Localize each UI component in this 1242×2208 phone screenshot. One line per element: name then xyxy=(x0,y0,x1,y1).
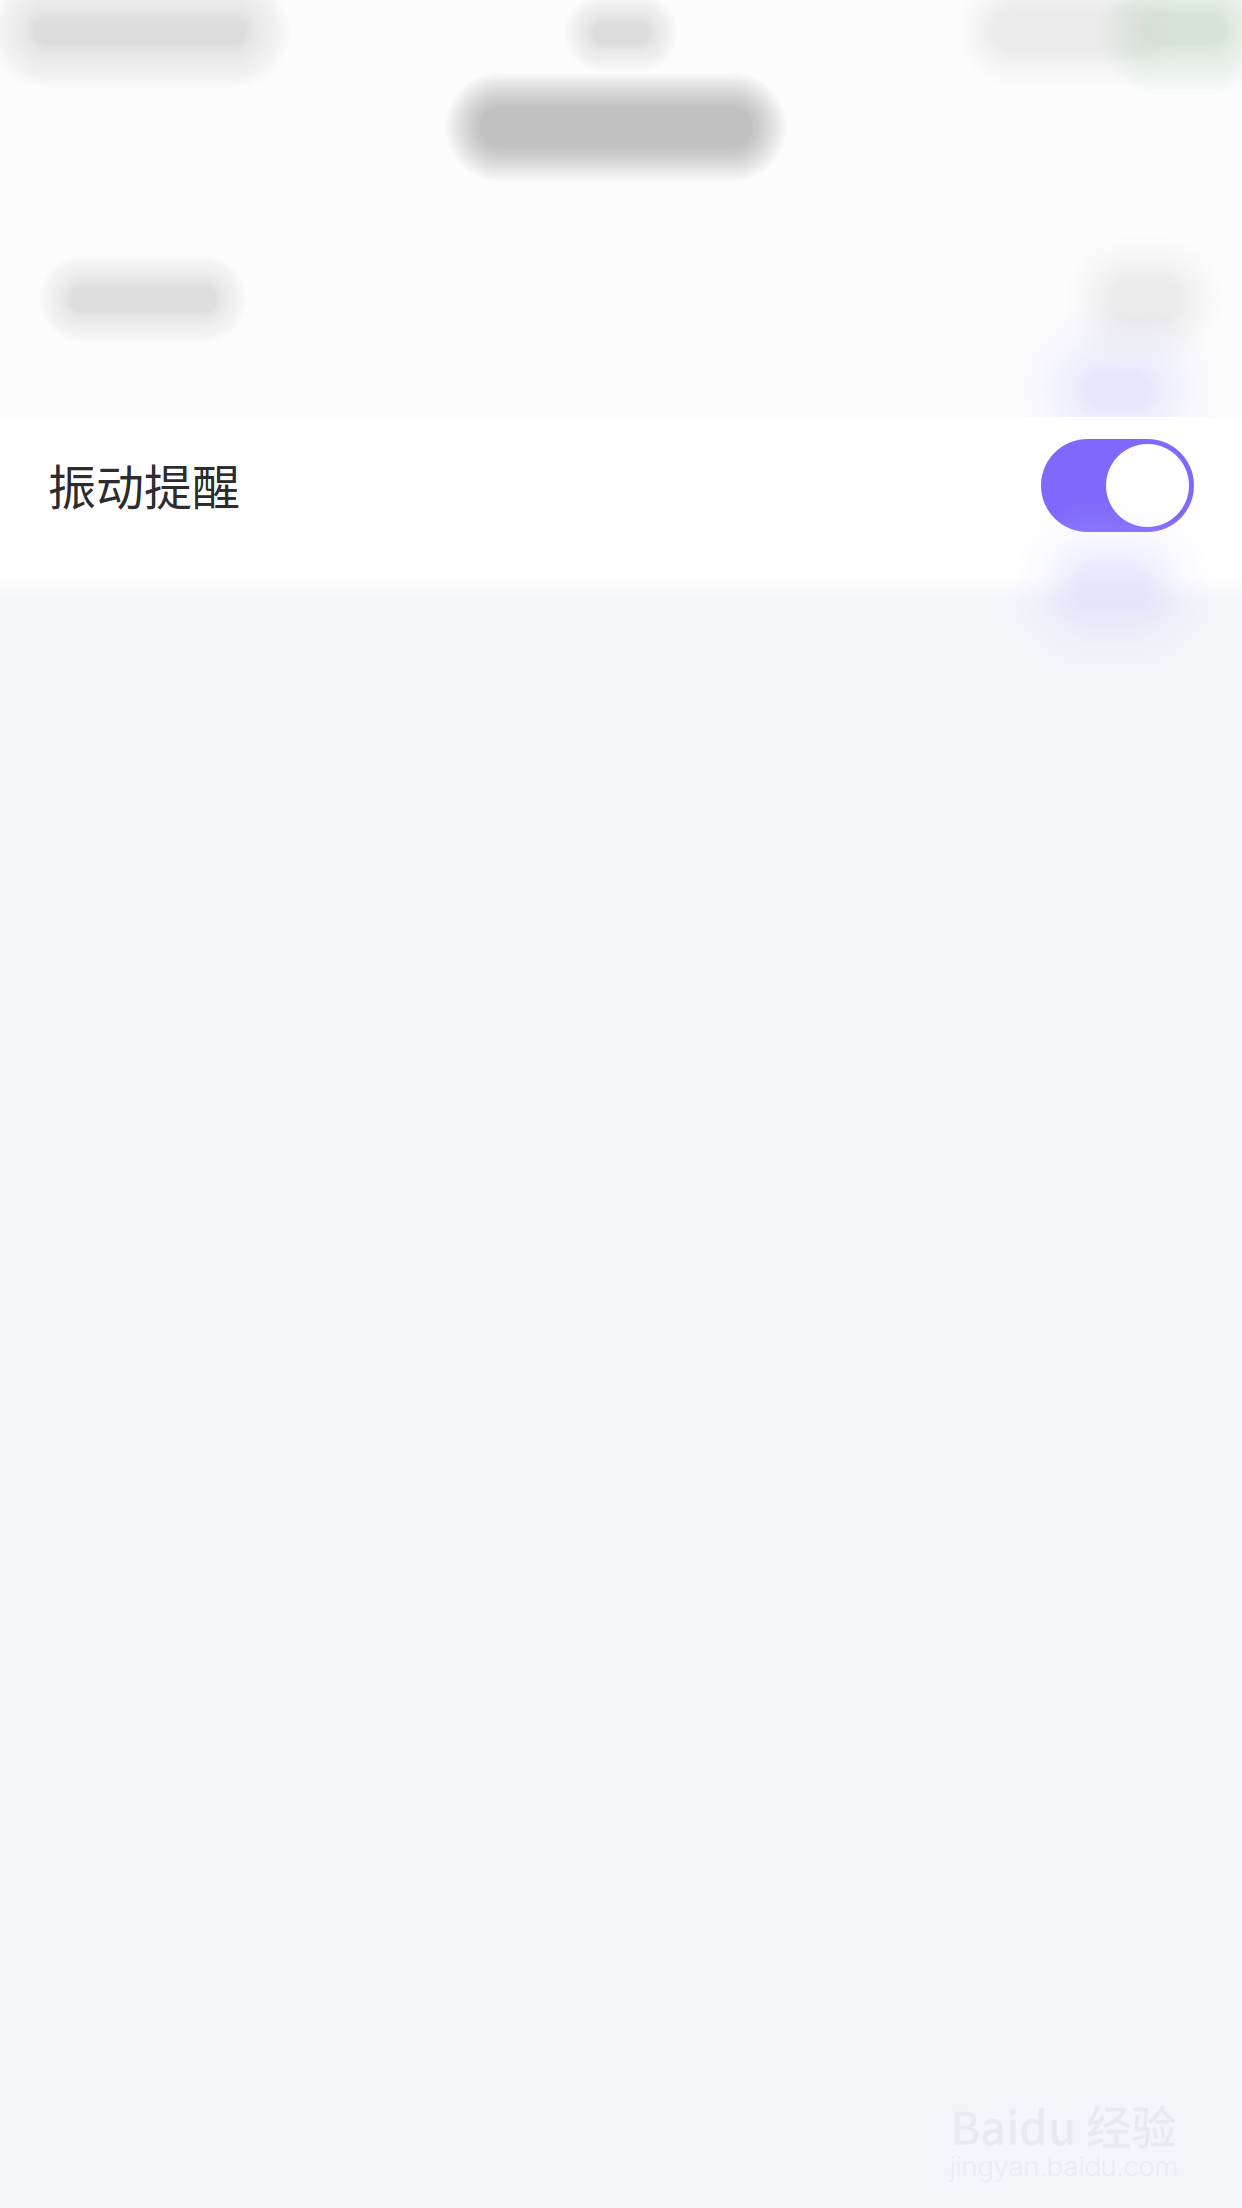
button[interactable]: 振动提醒 xyxy=(0,417,1242,575)
staticText: jingyan.baidu.com xyxy=(949,2149,1178,2183)
staticText: 振动提醒 xyxy=(48,449,240,519)
staticText: Baidu 经验 xyxy=(950,2092,1176,2158)
